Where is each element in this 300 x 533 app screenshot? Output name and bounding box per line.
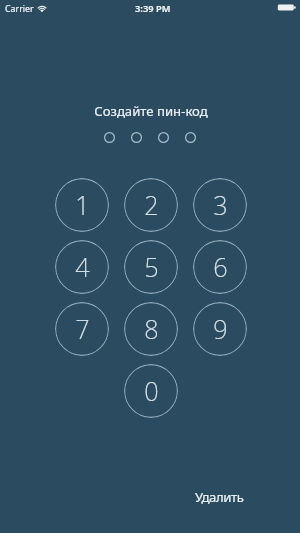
button[interactable]: 8 (124, 302, 178, 356)
button[interactable]: 1 (55, 178, 109, 232)
staticText: 1 (75, 188, 90, 222)
button[interactable]: 0 (124, 364, 178, 418)
button[interactable]: Удалить (185, 484, 254, 510)
other: Wi-Fi signal (37, 5, 47, 12)
button[interactable]: 5 (124, 240, 178, 294)
button[interactable]: 7 (55, 302, 109, 356)
button[interactable]: 6 (193, 240, 247, 294)
staticText: Создайте пин-код (94, 102, 208, 120)
other: PIN entry, 0 of 4 digits (104, 132, 196, 143)
staticText: 0 (144, 374, 159, 408)
staticText: 2 (144, 188, 159, 222)
staticText: 6 (213, 250, 228, 284)
staticText: 4 (75, 250, 90, 284)
staticText: 7 (75, 312, 90, 346)
staticText: Удалить (195, 488, 244, 506)
button[interactable]: 9 (193, 302, 247, 356)
staticText: 3:39 PM (135, 2, 171, 15)
staticText: 5 (144, 250, 159, 284)
button[interactable]: 4 (55, 240, 109, 294)
button[interactable]: 3 (193, 178, 247, 232)
other: Battery full (277, 4, 296, 12)
staticText: 3 (213, 188, 228, 222)
button[interactable]: 2 (124, 178, 178, 232)
staticText: Carrier (5, 3, 34, 15)
staticText: 9 (213, 312, 228, 346)
staticText: 8 (144, 312, 159, 346)
